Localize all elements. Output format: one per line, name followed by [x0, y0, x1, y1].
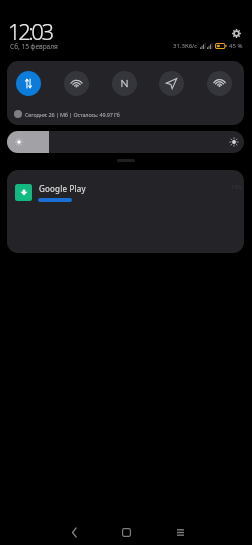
- button[interactable]: Location: [159, 71, 184, 96]
- staticText: Сб, 15 февраля: [10, 42, 58, 51]
- button[interactable]: NFC: [112, 71, 137, 96]
- staticText: Google Play: [39, 183, 86, 194]
- staticText: 31.3К6/с: [173, 42, 198, 50]
- button[interactable]: Mobile data: [16, 71, 41, 96]
- button[interactable]: Hotspot: [207, 71, 232, 96]
- staticText: Сегодня: 26 | Мб | Осталось: 49.97 Гб: [25, 111, 120, 118]
- button[interactable]: Wi-Fi: [64, 71, 89, 96]
- staticText: 45 %: [229, 42, 243, 50]
- button[interactable]: Recents: [158, 510, 202, 545]
- button[interactable]: Back: [52, 510, 96, 545]
- button[interactable]: Settings: [228, 25, 244, 41]
- staticText: 12:03: [8, 16, 52, 46]
- button[interactable]: Google Play: [7, 170, 244, 253]
- button[interactable]: Brightness: [7, 131, 244, 153]
- button[interactable]: Home: [104, 510, 148, 545]
- staticText: 10%: [231, 183, 242, 190]
